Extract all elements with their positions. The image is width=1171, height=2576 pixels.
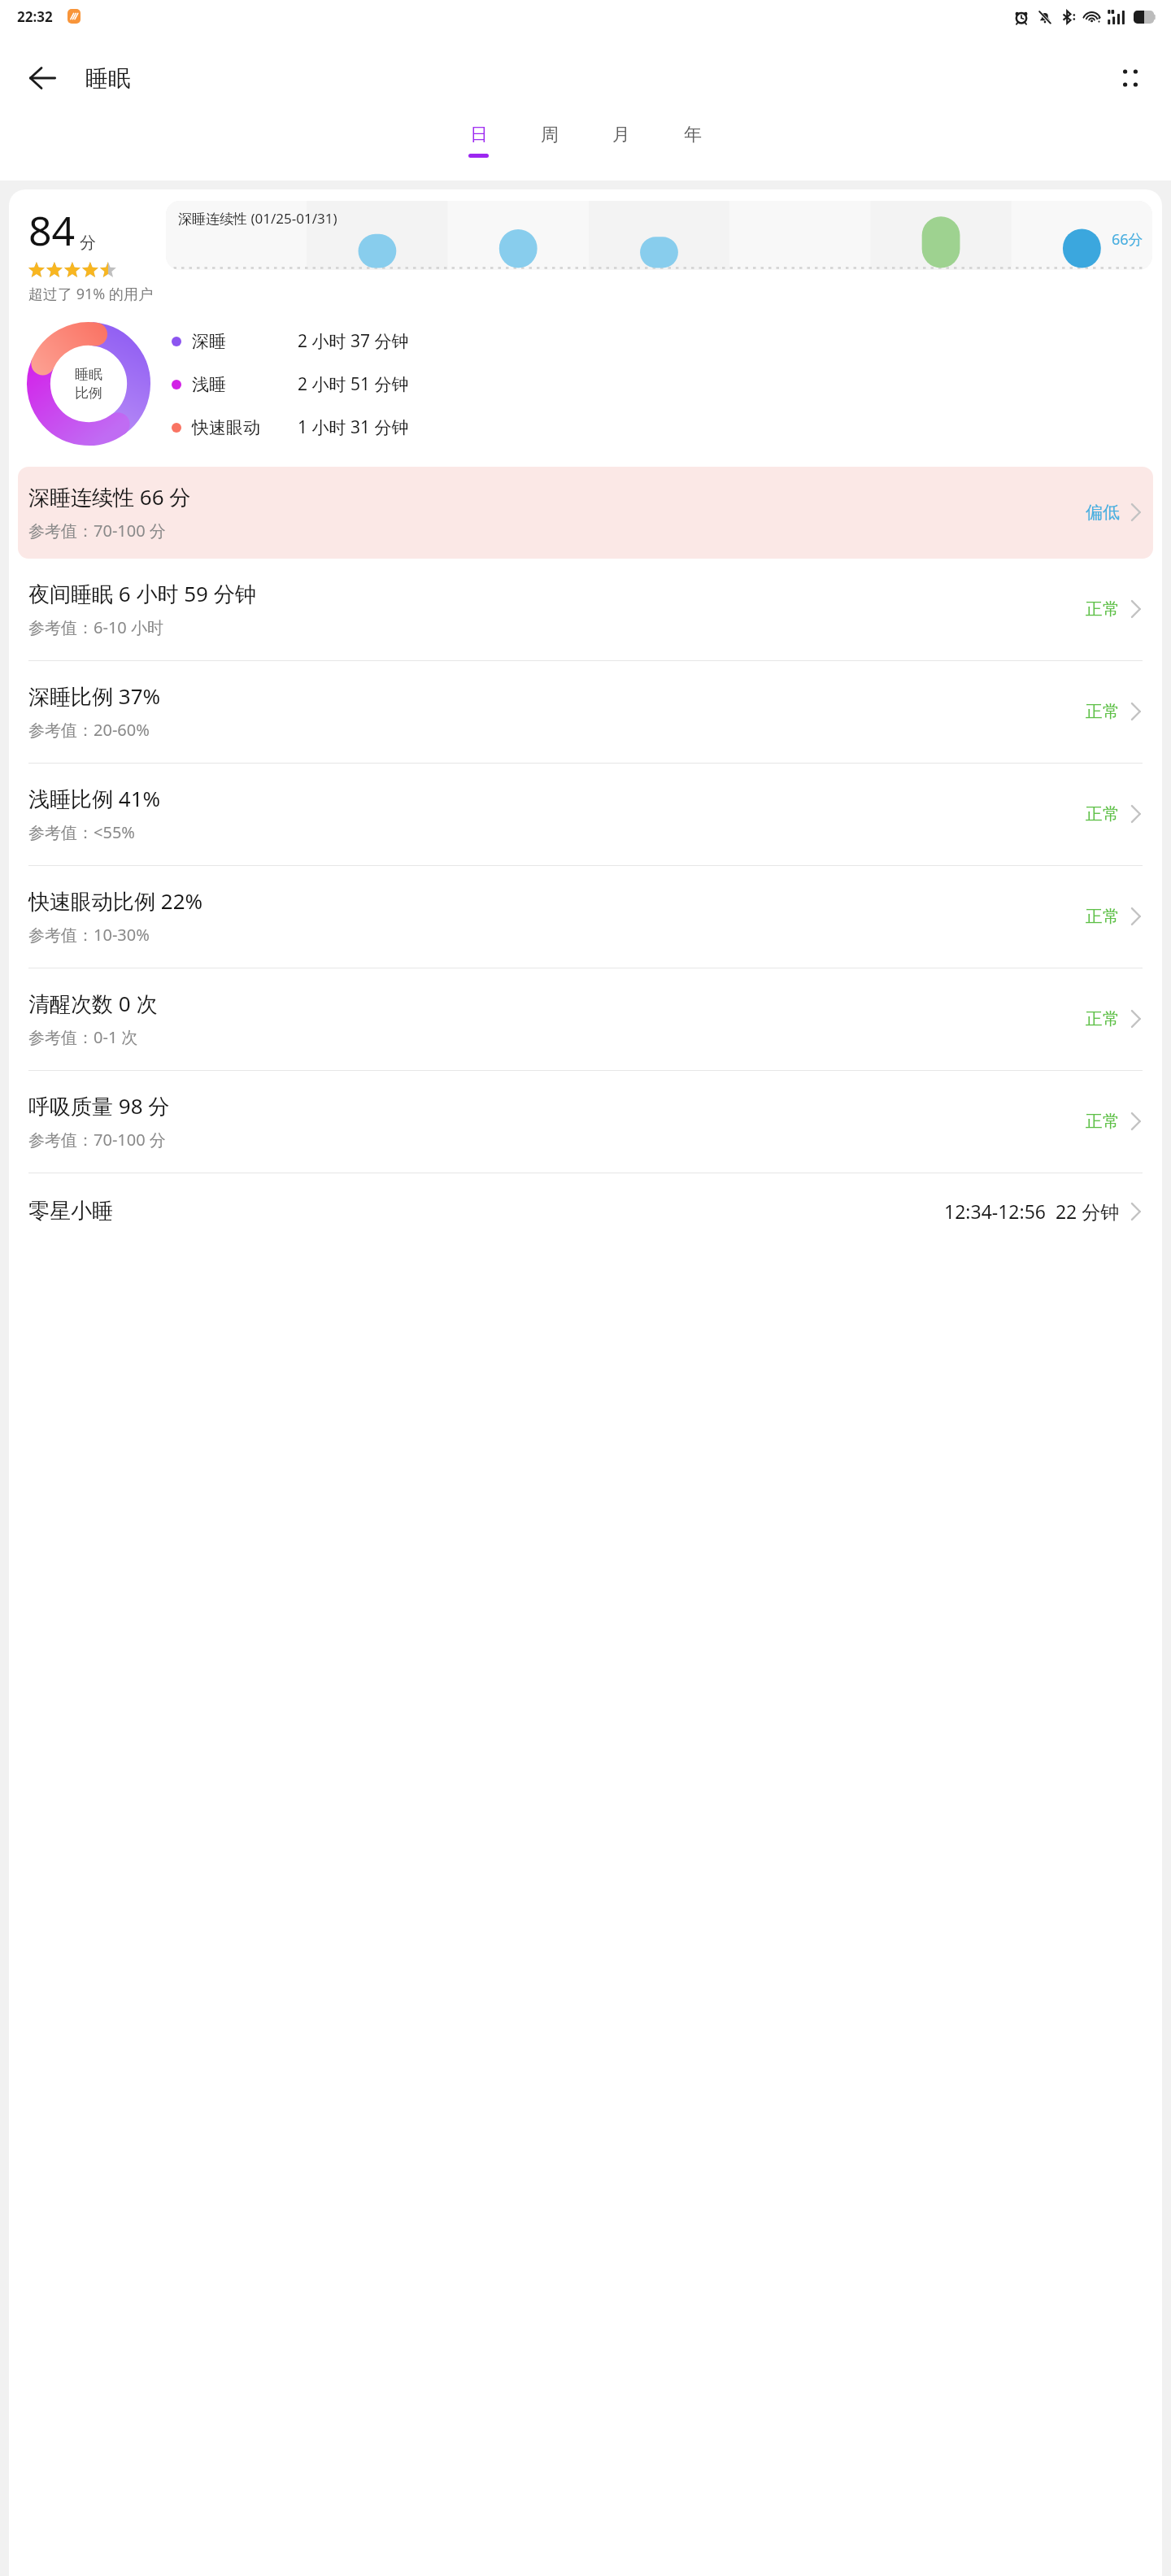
- button[interactable]: 浅睡比例 41%: [9, 764, 1162, 865]
- staticText: 日: [470, 124, 488, 146]
- button[interactable]: 日: [442, 124, 514, 181]
- staticText: 参考值：0-1 次: [28, 1026, 138, 1048]
- staticText: 睡眠: [75, 366, 102, 383]
- button[interactable]: 零星小睡: [9, 1173, 1162, 1225]
- staticText: 深睡比例 37%: [28, 681, 161, 711]
- staticText: 2 小时 37 分钟: [298, 329, 409, 353]
- staticText: 1 小时 31 分钟: [298, 416, 409, 439]
- staticText: 深睡连续性 (01/25-01/31): [178, 209, 337, 228]
- staticText: 超过了 91% 的用户: [28, 284, 153, 304]
- staticText: 正常: [1086, 701, 1120, 722]
- staticText: 快速眼动: [192, 417, 260, 438]
- staticText: 正常: [1086, 1008, 1120, 1029]
- staticText: 分: [80, 233, 96, 253]
- button[interactable]: 清醒次数 0 次: [9, 968, 1162, 1070]
- staticText: 参考值：70-100 分: [28, 520, 166, 542]
- staticText: 年: [684, 124, 702, 146]
- staticText: 浅睡比例 41%: [28, 784, 161, 813]
- staticText: 深睡: [192, 331, 226, 352]
- staticText: 2 小时 51 分钟: [298, 372, 409, 396]
- button[interactable]: 年: [657, 124, 729, 181]
- button[interactable]: More options: [1104, 52, 1156, 104]
- staticText: 正常: [1086, 906, 1120, 927]
- button[interactable]: 深睡连续性 (01/25-01/31): [166, 201, 1152, 270]
- staticText: 深睡连续性 66 分: [28, 482, 191, 511]
- staticText: 正常: [1086, 1111, 1120, 1132]
- staticText: 呼吸质量 98 分: [28, 1091, 170, 1120]
- staticText: 夜间睡眠 6 小时 59 分钟: [28, 579, 256, 608]
- staticText: 参考值：6-10 小时: [28, 616, 163, 638]
- staticText: 参考值：70-100 分: [28, 1129, 166, 1151]
- button[interactable]: 夜间睡眠 6 小时 59 分钟: [9, 559, 1162, 660]
- staticText: 12:34-12:56 22 分钟: [944, 1199, 1120, 1224]
- staticText: 月: [612, 124, 630, 146]
- staticText: 睡眠: [85, 64, 131, 93]
- button[interactable]: 快速眼动比例 22%: [9, 866, 1162, 968]
- staticText: 84: [28, 202, 76, 258]
- button[interactable]: 呼吸质量 98 分: [9, 1071, 1162, 1173]
- staticText: 浅睡: [192, 374, 226, 395]
- staticText: 快速眼动比例 22%: [28, 886, 203, 916]
- staticText: 参考值：<55%: [28, 821, 135, 843]
- staticText: 零星小睡: [28, 1198, 113, 1225]
- button[interactable]: 深睡比例 37%: [9, 661, 1162, 763]
- staticText: 清醒次数 0 次: [28, 989, 158, 1018]
- staticText: 参考值：10-30%: [28, 924, 150, 946]
- staticText: 正常: [1086, 803, 1120, 825]
- staticText: 22:32: [17, 7, 53, 26]
- staticText: 比例: [75, 385, 102, 402]
- staticText: 正常: [1086, 598, 1120, 620]
- staticText: 参考值：20-60%: [28, 719, 150, 741]
- button[interactable]: 深睡连续性 66 分: [18, 467, 1153, 559]
- button[interactable]: 月: [585, 124, 657, 181]
- button[interactable]: 周: [514, 124, 585, 181]
- button[interactable]: Back: [16, 52, 68, 104]
- staticText: 偏低: [1086, 502, 1120, 523]
- staticText: 周: [541, 124, 559, 146]
- staticText: 66分: [1112, 229, 1143, 250]
